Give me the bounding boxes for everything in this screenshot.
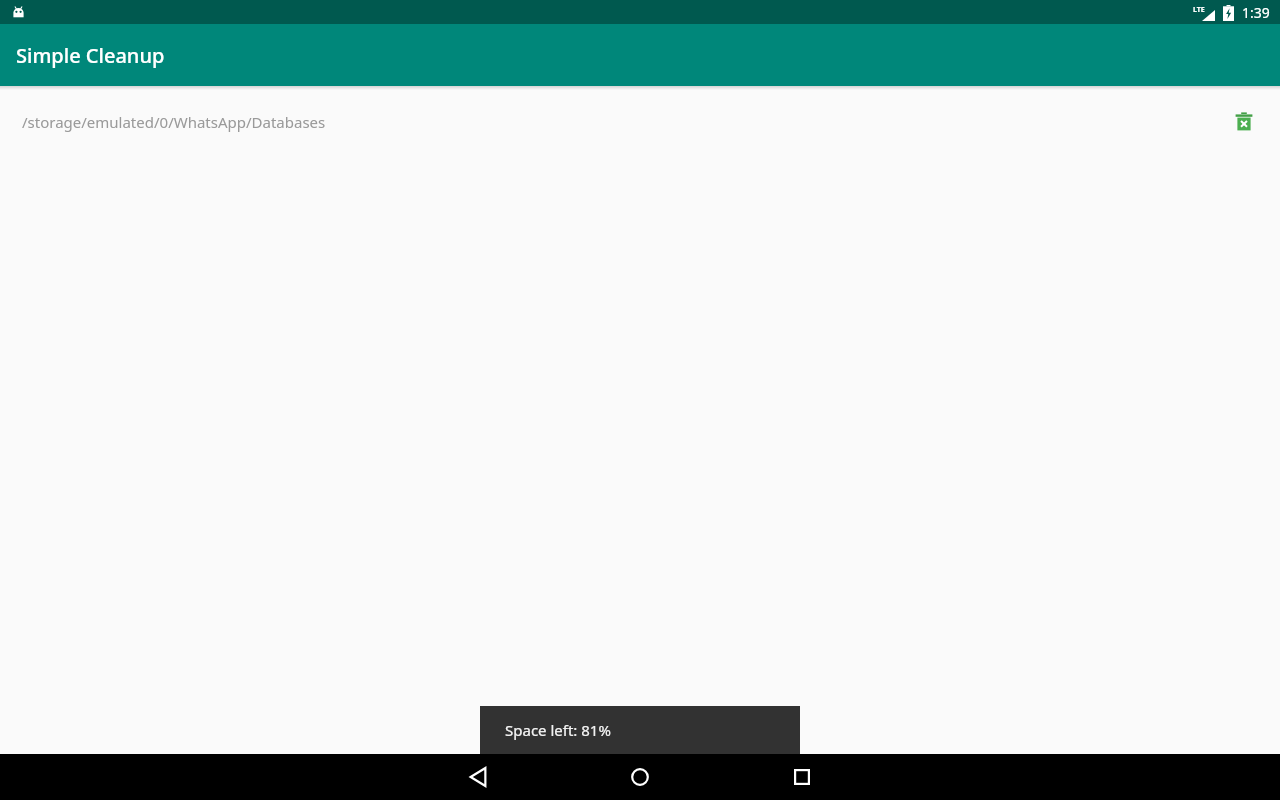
staticText: LTE (1193, 5, 1205, 15)
button[interactable]: Delete folder contents (1228, 106, 1260, 138)
staticText: Simple Cleanup (16, 42, 165, 69)
button[interactable]: /storage/emulated/0/WhatsApp/Databases (0, 90, 1280, 154)
staticText: Space left: 81% (505, 720, 611, 740)
staticText: 1:39 (1242, 3, 1270, 22)
staticText: /storage/emulated/0/WhatsApp/Databases (22, 112, 326, 132)
button[interactable]: Recent apps (762, 754, 842, 800)
button[interactable]: Back (438, 754, 518, 800)
button[interactable]: Home (600, 754, 680, 800)
